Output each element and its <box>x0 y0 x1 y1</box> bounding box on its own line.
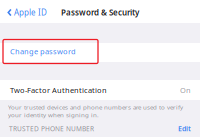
staticText: Change password <box>10 46 76 56</box>
button[interactable]: Edit <box>172 124 200 133</box>
staticText: On <box>180 85 191 95</box>
staticText: Apple ID <box>14 7 47 18</box>
staticText: Two-Factor Authentication <box>10 85 107 95</box>
button[interactable]: Apple ID <box>0 0 52 23</box>
button[interactable]: Change password <box>0 43 200 62</box>
staticText: TRUSTED PHONE NUMBER <box>9 124 94 133</box>
staticText: Edit <box>178 124 191 133</box>
button[interactable]: Two-Factor Authentication <box>0 80 200 100</box>
staticText: Your trusted devices and phone numbers a… <box>8 103 183 119</box>
staticText: Password & Security <box>61 7 139 18</box>
